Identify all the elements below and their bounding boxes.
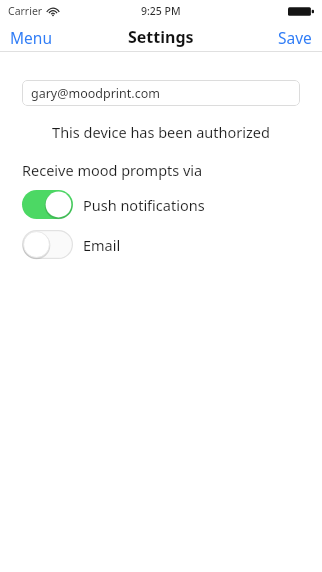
staticText: Menu [10, 27, 52, 48]
staticText: gary@moodprint.com [31, 85, 160, 102]
staticText: Carrier [8, 4, 43, 18]
button[interactable]: Menu [0, 23, 62, 52]
button[interactable]: On [0, 188, 322, 221]
staticText: Receive mood prompts via [22, 160, 203, 180]
staticText: Email [83, 235, 121, 255]
button[interactable]: On [22, 190, 73, 219]
button[interactable]: Off [0, 228, 322, 261]
staticText: 9:25 PM [141, 4, 181, 18]
button[interactable]: gary@moodprint.com [22, 80, 300, 106]
staticText: Settings [128, 26, 194, 48]
staticText: This device has been authorized [0, 122, 322, 142]
button[interactable]: Off [22, 230, 73, 259]
staticText: Save [278, 27, 312, 48]
staticText: Push notifications [83, 195, 205, 215]
button[interactable]: Save [268, 23, 322, 52]
